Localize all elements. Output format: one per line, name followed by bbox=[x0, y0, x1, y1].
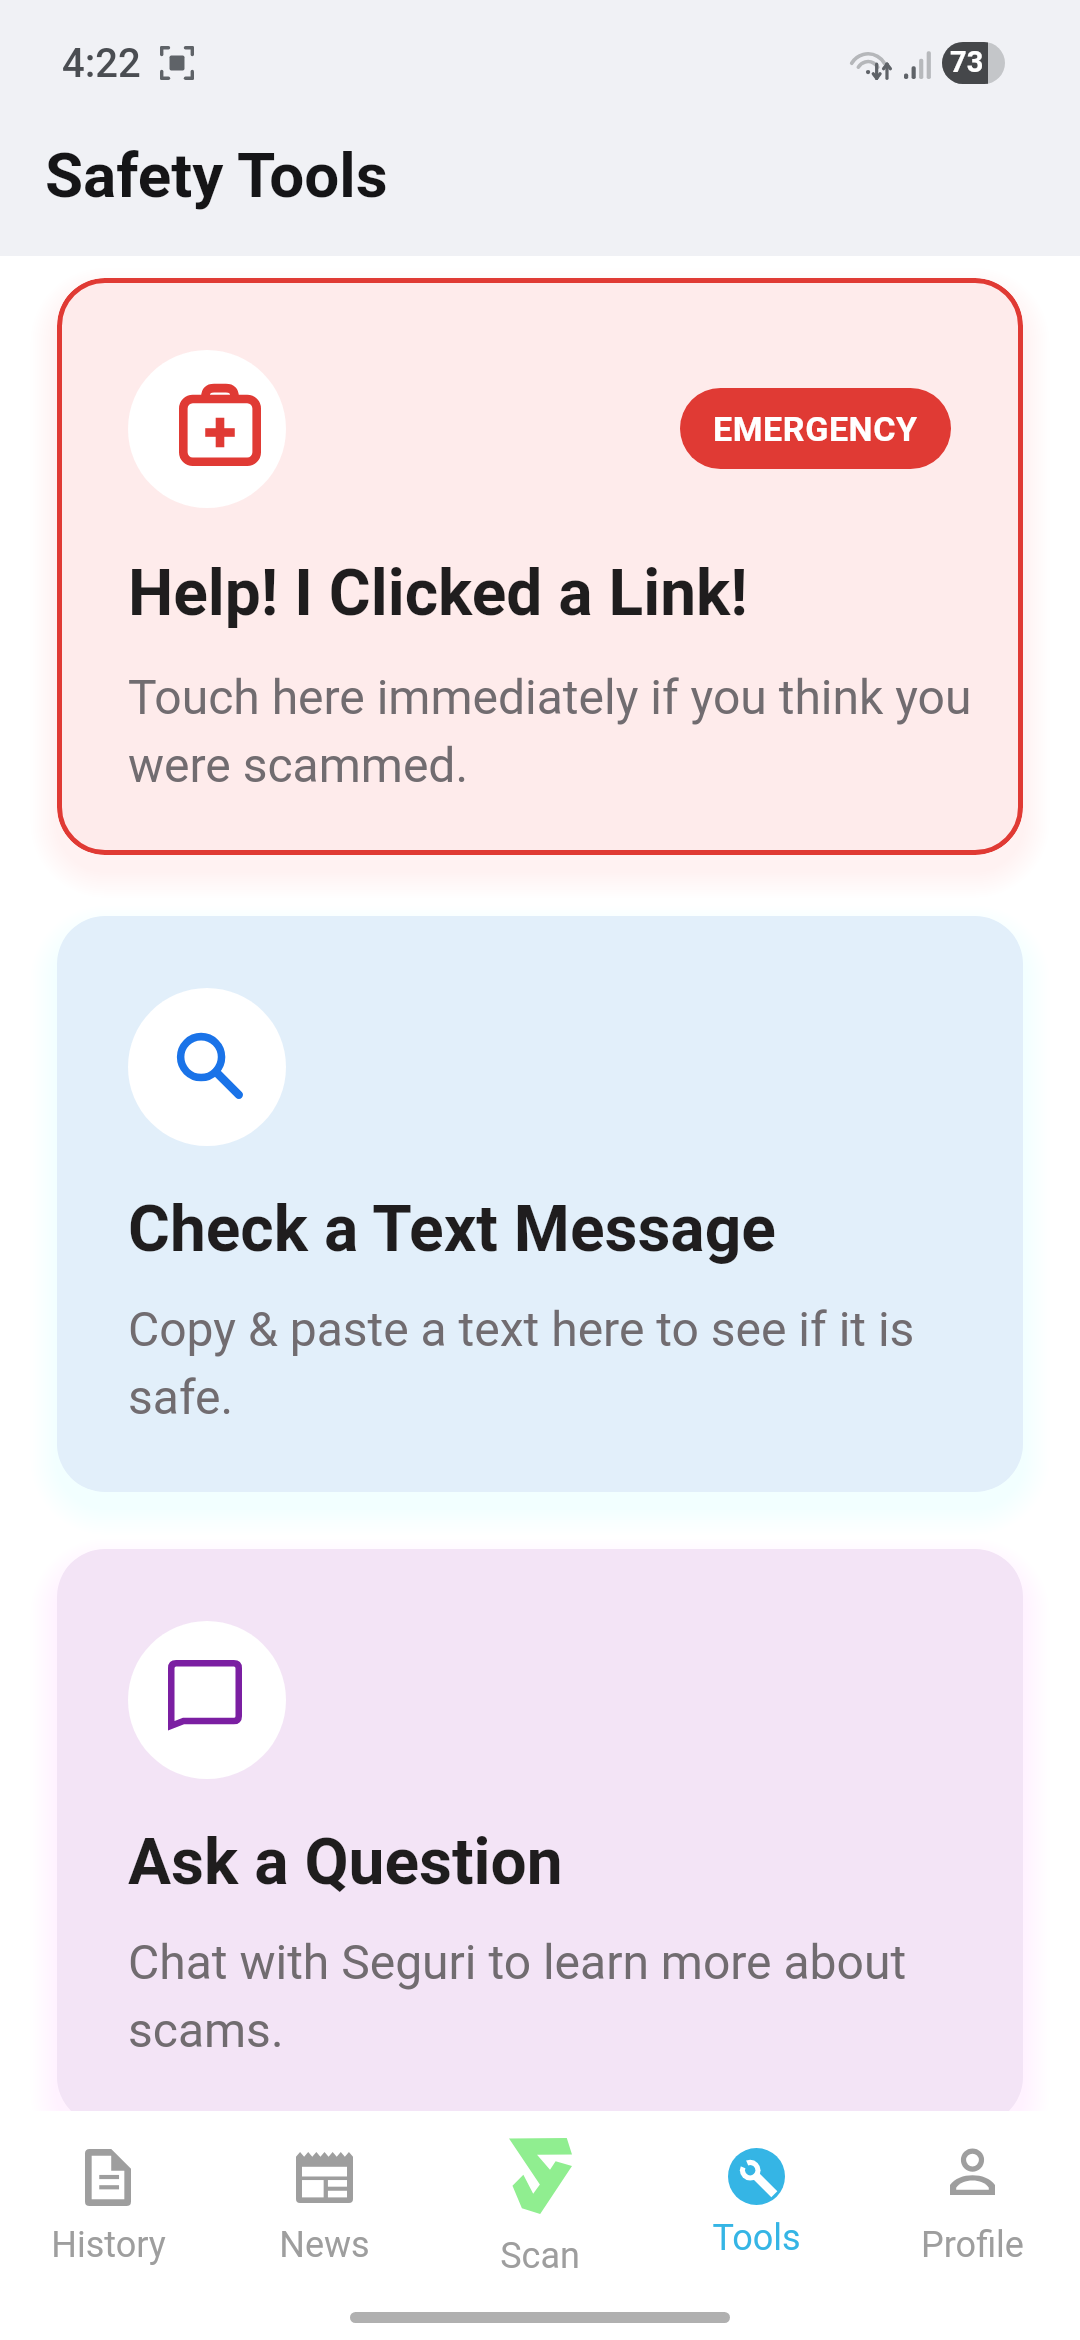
button[interactable]: EMERGENCY bbox=[680, 388, 951, 469]
button[interactable]: Help! I Clicked a Link! bbox=[57, 278, 1023, 855]
staticText: News bbox=[279, 2224, 370, 2266]
button[interactable]: History bbox=[0, 2111, 216, 2340]
staticText: Tools bbox=[712, 2217, 801, 2259]
other: Screenshot bbox=[160, 46, 194, 80]
other: Mobile signal bbox=[904, 47, 931, 80]
other: Wi-Fi bbox=[850, 47, 893, 80]
staticText: Check a Text Message bbox=[128, 1192, 776, 1267]
staticText: Safety Tools bbox=[45, 139, 388, 212]
button[interactable]: News bbox=[216, 2111, 432, 2340]
button[interactable]: Profile bbox=[864, 2111, 1080, 2340]
other: Battery 73 percent bbox=[942, 42, 1005, 84]
staticText: EMERGENCY bbox=[713, 409, 918, 449]
button[interactable]: Ask a Question bbox=[57, 1549, 1023, 2125]
staticText: 73 bbox=[950, 45, 984, 79]
button[interactable]: Tools bbox=[648, 2111, 864, 2340]
staticText: Profile bbox=[921, 2224, 1024, 2266]
staticText: Scan bbox=[500, 2235, 580, 2277]
staticText: Ask a Question bbox=[128, 1825, 563, 1900]
staticText: Chat with Seguri to learn more about sca… bbox=[128, 1934, 989, 2059]
staticText: Help! I Clicked a Link! bbox=[128, 556, 748, 631]
other: Tools bbox=[728, 2148, 785, 2205]
staticText: Copy & paste a text here to see if it is… bbox=[128, 1301, 989, 1426]
button[interactable]: Check a Text Message bbox=[57, 916, 1023, 1492]
button[interactable]: Scan bbox=[432, 2111, 648, 2340]
staticText: 4:22 bbox=[62, 40, 141, 87]
staticText: Touch here immediately if you think you … bbox=[128, 669, 989, 794]
staticText: History bbox=[51, 2224, 166, 2266]
